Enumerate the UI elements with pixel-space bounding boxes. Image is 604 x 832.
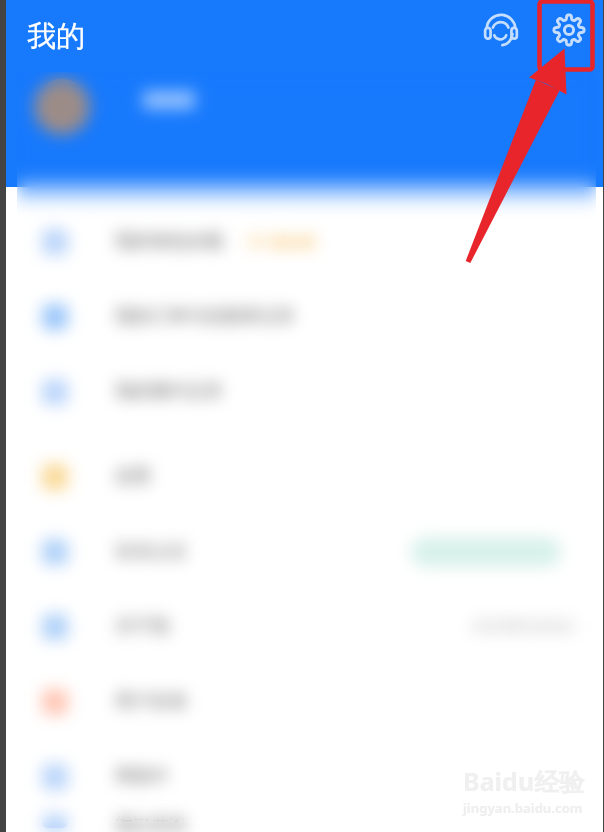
- staticText: 实名认证: [115, 540, 187, 563]
- staticText: 退出登录: [115, 814, 187, 832]
- button[interactable]: 帮助中: [6, 722, 603, 797]
- staticText: 未设置收货地址: [471, 600, 576, 619]
- staticText: 帮助中: [115, 748, 169, 771]
- staticText: 我的订单与优惠券记录: [115, 288, 295, 311]
- staticText: 用户反馈: [115, 673, 187, 696]
- button[interactable]: 关于我: [17, 589, 596, 664]
- button[interactable]: 用户反馈: [17, 664, 596, 739]
- staticText: 我的预约记录: [115, 363, 223, 386]
- button[interactable]: 我的订单与优惠券记录: [6, 262, 603, 337]
- staticText: 设置: [115, 465, 151, 488]
- button[interactable]: 用户反馈: [6, 647, 603, 722]
- staticText: 我的预约记录: [115, 380, 223, 403]
- staticText: 退出登录: [115, 803, 187, 826]
- staticText: 我的订单与优惠券记录: [115, 305, 295, 328]
- staticText: 实名认证: [115, 523, 187, 546]
- button[interactable]: 我的钱包余额: [6, 187, 603, 262]
- button[interactable]: 我的钱包余额: [17, 204, 596, 279]
- staticText: 设置: [115, 448, 151, 471]
- staticText: 关于我: [115, 598, 169, 621]
- button[interactable]: 实名认证: [6, 497, 603, 572]
- button[interactable]: Settings: [544, 5, 594, 55]
- staticText: 帮助中: [115, 765, 169, 788]
- button[interactable]: 我的预约记录: [17, 354, 596, 429]
- staticText: 我的: [27, 18, 85, 55]
- staticText: ￥128.00: [245, 230, 316, 253]
- staticText: 我的钱包余额: [115, 213, 223, 236]
- staticText: 用户反馈: [115, 690, 187, 713]
- staticText: Baidu经验: [463, 764, 585, 798]
- button[interactable]: 退出登录: [6, 797, 603, 832]
- button[interactable]: 帮助中: [17, 739, 596, 814]
- staticText: 我的钱包余额: [115, 230, 223, 253]
- button[interactable]: Customer service: [476, 5, 526, 55]
- button[interactable]: 设置: [17, 439, 596, 514]
- button[interactable]: 退出登录: [17, 814, 596, 832]
- button[interactable]: 我的预约记录: [6, 337, 603, 412]
- button[interactable]: 我的订单与优惠券记录: [17, 279, 596, 354]
- staticText: jingyan.baidu.com: [463, 799, 583, 817]
- button[interactable]: 关于我: [6, 572, 603, 647]
- staticText: 关于我: [115, 615, 169, 638]
- button[interactable]: 实名认证: [17, 514, 596, 589]
- staticText: ￥128.00: [245, 213, 316, 236]
- button[interactable]: 设置: [6, 422, 603, 497]
